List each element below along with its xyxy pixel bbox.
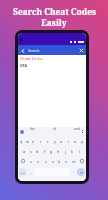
staticText: h: [57, 149, 60, 154]
button[interactable]: More: [81, 130, 84, 133]
staticText: b: [58, 159, 61, 164]
button[interactable]: j: [62, 146, 69, 156]
staticText: q: [20, 139, 23, 144]
button[interactable]: Voice input: [20, 130, 24, 134]
staticText: i: [68, 139, 69, 144]
staticText: and: [74, 127, 80, 131]
button[interactable]: b: [56, 156, 63, 166]
staticText: o: [74, 139, 77, 144]
staticText: ,: [30, 169, 31, 174]
button[interactable]: q: [18, 136, 24, 146]
button[interactable]: a: [21, 146, 27, 156]
staticText: u: [60, 139, 63, 144]
staticText: GTA: [20, 63, 27, 68]
staticText: m: [72, 159, 76, 164]
staticText: a: [23, 149, 26, 154]
staticText: Search: [28, 48, 40, 53]
button[interactable]: r: [37, 136, 44, 146]
button[interactable]: x: [35, 156, 42, 166]
button[interactable]: d: [34, 146, 41, 156]
staticText: e: [32, 139, 35, 144]
staticText: x: [37, 159, 40, 164]
staticText: g: [50, 149, 53, 154]
button[interactable]: n: [63, 156, 70, 166]
staticText: r: [40, 139, 42, 144]
staticText: y: [54, 139, 56, 144]
button[interactable]: y: [51, 136, 58, 146]
button[interactable]: ?123: [19, 168, 26, 176]
staticText: l: [79, 149, 80, 154]
button[interactable]: w: [24, 136, 30, 146]
staticText: c: [45, 159, 47, 164]
staticText: ?123: [20, 171, 26, 174]
staticText: the: [30, 127, 35, 131]
button[interactable]: k: [69, 146, 76, 156]
button[interactable]: Enter: [77, 168, 85, 176]
button[interactable]: f: [41, 146, 48, 156]
button[interactable]: Comma: [28, 169, 33, 174]
staticText: Search Cheat Codes: [13, 6, 96, 17]
staticText: k: [71, 149, 74, 154]
button[interactable]: Close: [78, 47, 85, 54]
staticText: Ch: [20, 56, 25, 61]
staticText: des: [37, 56, 43, 61]
staticText: v: [52, 159, 54, 164]
staticText: d: [36, 149, 39, 154]
staticText: w: [26, 139, 29, 144]
button[interactable]: p: [79, 136, 86, 146]
button[interactable]: Backspace: [77, 156, 86, 166]
button[interactable]: g: [48, 146, 55, 156]
staticText: s: [30, 149, 32, 154]
staticText: eat: [25, 56, 32, 61]
button[interactable]: v: [49, 156, 56, 166]
button[interactable]: Shift: [18, 156, 27, 166]
button[interactable]: Back: [19, 47, 26, 54]
button[interactable]: Period: [71, 169, 76, 174]
staticText: t: [47, 139, 49, 144]
staticText: z: [30, 159, 32, 164]
button[interactable]: e: [30, 136, 37, 146]
staticText: .: [73, 169, 74, 174]
staticText: p: [81, 139, 84, 144]
staticText: of: [53, 127, 57, 131]
button[interactable]: z: [27, 156, 35, 166]
button[interactable]: s: [27, 146, 34, 156]
button[interactable]: l: [76, 146, 83, 156]
staticText: n: [65, 159, 68, 164]
staticText: f: [44, 149, 46, 154]
button[interactable]: o: [72, 136, 79, 146]
staticText: Easily: [41, 17, 67, 28]
button[interactable]: u: [58, 136, 65, 146]
button[interactable]: h: [55, 146, 62, 156]
button[interactable]: i: [65, 136, 72, 146]
staticText: Co: [32, 56, 37, 61]
button[interactable]: m: [70, 156, 77, 166]
button[interactable]: c: [42, 156, 49, 166]
button[interactable]: t: [44, 136, 51, 146]
staticText: j: [65, 149, 66, 154]
